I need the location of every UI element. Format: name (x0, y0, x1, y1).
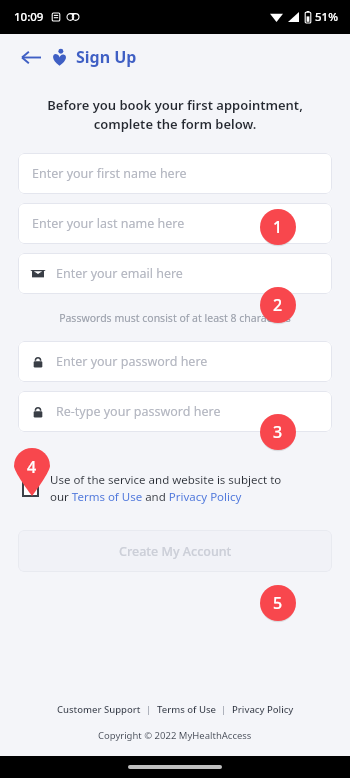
staticText: 51% (315, 9, 338, 25)
button[interactable]: Enter your password here (18, 341, 332, 382)
staticText: Create My Account (119, 543, 232, 560)
staticText: 3 (273, 421, 283, 443)
staticText: Re-type your password here (56, 403, 221, 420)
staticText: Passwords must consist of at least 8 cha… (0, 311, 350, 325)
staticText: Copyright © 2022 MyHealthAccess (98, 729, 252, 742)
staticText: 4 (27, 456, 37, 478)
staticText: Enter your password here (56, 353, 208, 370)
staticText: Customer Support (57, 703, 141, 716)
button[interactable]: Enter your last name here (18, 203, 332, 244)
staticText: 1 (273, 216, 283, 238)
button[interactable]: Re-type your password here (18, 391, 332, 432)
button[interactable]: Customer Support (57, 703, 141, 716)
button[interactable]: Enter your email here (18, 253, 332, 294)
staticText: Before you book your first appointment, … (22, 96, 328, 133)
button[interactable]: Terms of Use (157, 703, 216, 716)
staticText: Use of the service and website is subjec… (50, 472, 282, 504)
button[interactable]: Create My Account (18, 530, 332, 572)
staticText: Enter your last name here (32, 215, 185, 232)
staticText: Terms of Use (157, 703, 216, 716)
staticText: Enter your email here (56, 265, 183, 282)
staticText: 2 (273, 294, 283, 316)
staticText: Privacy Policy (232, 703, 294, 716)
staticText: 5 (273, 592, 283, 614)
staticText: | (216, 703, 232, 716)
button[interactable]: Back (18, 44, 44, 70)
button[interactable]: Enter your first name here (18, 153, 332, 194)
button[interactable]: Use of the service and website is subjec… (22, 472, 328, 504)
button[interactable]: Privacy Policy (232, 703, 294, 716)
staticText: | (141, 703, 157, 716)
staticText: Enter your first name here (32, 165, 187, 182)
staticText: Sign Up (76, 46, 137, 68)
staticText: 10:09 (14, 9, 44, 25)
